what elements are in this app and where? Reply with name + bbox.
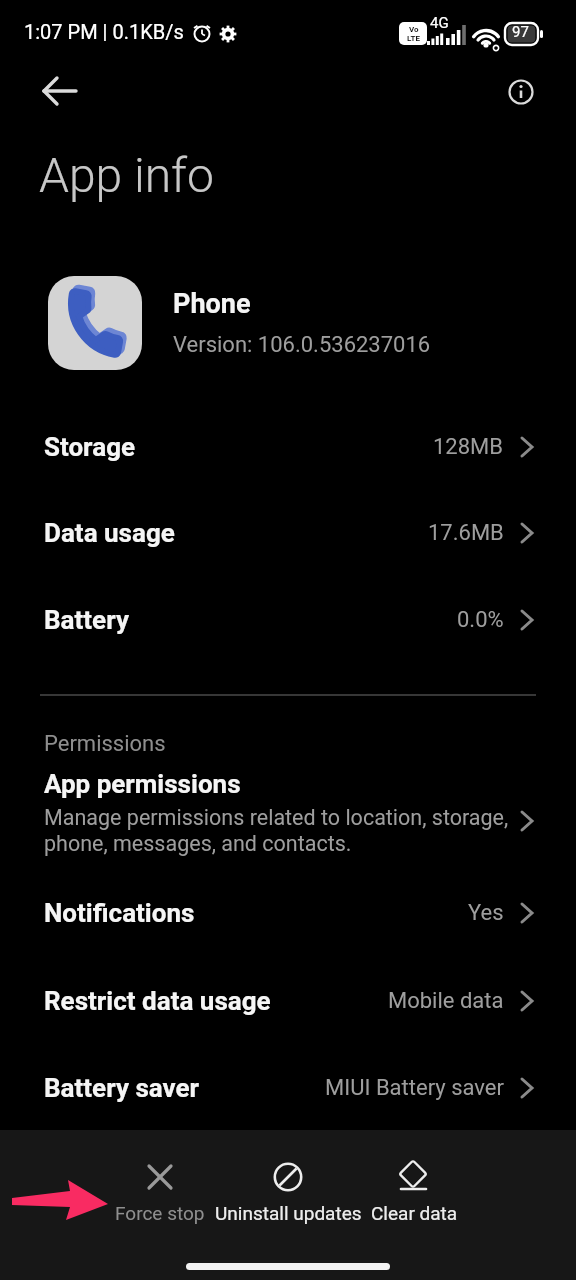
staticText: App info [39,147,214,203]
staticText: Permissions [44,731,166,757]
button[interactable]: Uninstall updates [193,1162,383,1224]
staticText: Manage permissions related to location, … [44,805,509,856]
staticText: Clear data [371,1202,458,1224]
staticText: Storage [44,432,136,462]
staticText: Notifications [44,898,195,928]
staticText: 128MB [433,434,504,460]
staticText: Uninstall updates [215,1202,362,1224]
button[interactable]: Force stop [100,1162,220,1224]
staticText: Battery saver [44,1073,200,1103]
button[interactable]: Restrict data usage [0,958,576,1044]
staticText: LTE [407,34,420,43]
button[interactable]: Battery saver [0,1045,576,1131]
button[interactable]: Notifications [0,870,576,956]
staticText: Data usage [44,518,175,548]
button[interactable] [498,69,544,115]
staticText: 17.6MB [428,520,504,546]
staticText: App permissions [44,769,241,799]
staticText: Mobile data [388,988,504,1014]
button[interactable]: Battery [0,577,576,663]
staticText: Restrict data usage [44,986,271,1016]
staticText: Force stop [115,1202,205,1224]
button[interactable] [36,67,84,115]
button[interactable]: Data usage [0,490,576,576]
staticText: MIUI Battery saver [325,1075,504,1101]
staticText: Yes [468,900,504,926]
staticText: 0.0% [457,607,504,633]
staticText: Battery [44,605,129,635]
button[interactable]: Storage [0,404,576,490]
button[interactable]: Clear data [349,1162,479,1224]
staticText: 4G [430,14,449,32]
staticText: 1:07 PM | 0.1KB/s [24,20,184,43]
staticText: Vo [409,25,419,34]
staticText: 97 [512,23,529,41]
button[interactable]: App permissions [0,769,576,873]
staticText: Phone [173,288,251,320]
staticText: Version: 106.0.536237016 [173,332,431,358]
